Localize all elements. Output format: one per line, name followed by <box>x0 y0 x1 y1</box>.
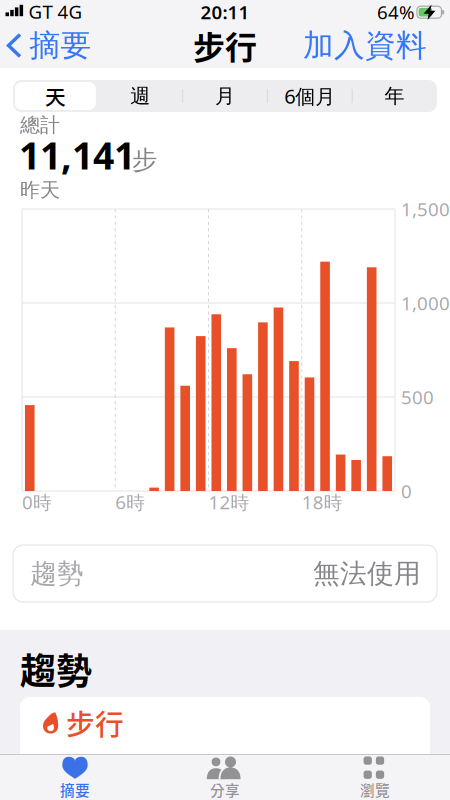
button[interactable]: 天 <box>15 82 96 110</box>
staticText: 0時 <box>22 490 52 514</box>
staticText: 無法使用 <box>313 557 421 590</box>
staticText: 月 <box>215 84 235 108</box>
staticText: 12時 <box>208 490 249 514</box>
staticText: 64% <box>377 0 415 24</box>
staticText: 6個月 <box>284 83 335 109</box>
staticText: 週 <box>130 84 150 108</box>
staticText: GT <box>28 0 52 24</box>
staticText: 摘要 <box>60 779 90 800</box>
staticText: 步 <box>132 144 157 175</box>
staticText: 天 <box>45 81 66 111</box>
staticText: 年 <box>385 84 405 108</box>
staticText: 摘要 <box>29 27 91 64</box>
staticText: 20:11 <box>200 0 249 24</box>
staticText: 分享 <box>210 779 240 800</box>
staticText: 趨勢 <box>20 643 92 695</box>
staticText: 0 <box>401 479 412 503</box>
button[interactable]: 月 <box>184 82 265 110</box>
staticText: 加入資料 <box>303 27 427 64</box>
staticText: 步行 <box>66 702 124 743</box>
button[interactable]: 6個月 <box>269 82 350 110</box>
staticText: 6時 <box>115 490 145 514</box>
staticText: 總計 <box>20 113 60 137</box>
staticText: 1,500 <box>401 197 450 221</box>
staticText: 4G <box>57 0 82 24</box>
button[interactable]: 加入資料 <box>287 25 427 65</box>
staticText: 1,000 <box>401 291 450 315</box>
button[interactable]: 摘要 <box>8 27 91 64</box>
staticText: 趨勢 <box>30 557 84 590</box>
staticText: 步行 <box>193 22 257 69</box>
button[interactable]: 分享 <box>150 754 300 800</box>
button[interactable]: 週 <box>100 82 181 110</box>
staticText: 18時 <box>302 490 343 514</box>
button[interactable]: 瀏覽 <box>300 754 450 800</box>
staticText: 500 <box>401 385 434 409</box>
button[interactable]: 摘要 <box>0 754 150 800</box>
button[interactable]: 步行 <box>20 697 430 754</box>
button[interactable]: 年 <box>354 82 435 110</box>
staticText: 昨天 <box>20 178 60 202</box>
staticText: 11,141 <box>19 130 135 180</box>
staticText: 瀏覽 <box>360 779 390 800</box>
